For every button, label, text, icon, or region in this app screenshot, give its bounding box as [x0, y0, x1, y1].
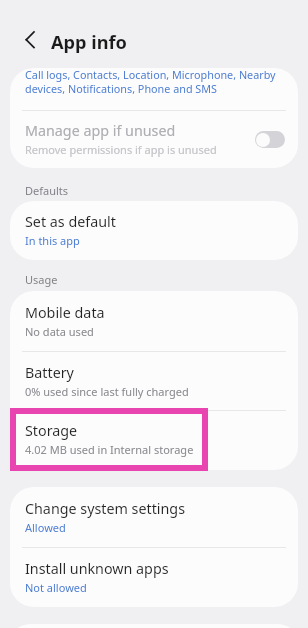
- staticText: Storage: [25, 422, 78, 441]
- button[interactable]: Storage: [10, 410, 298, 470]
- button[interactable]: Manage app if unused: [255, 131, 285, 148]
- staticText: 4.02 MB used in Internal storage: [25, 443, 194, 458]
- button[interactable]: Change system settings: [10, 487, 298, 547]
- button[interactable]: Manage app if unused: [10, 111, 298, 168]
- staticText: 0% used since last fully charged: [25, 384, 189, 399]
- staticText: Remove permissions if app is unused: [25, 142, 217, 157]
- button[interactable]: [10, 68, 298, 111]
- staticText: Usage: [25, 272, 58, 287]
- staticText: Manage app if unused: [25, 121, 176, 140]
- staticText: Install unknown apps: [25, 559, 169, 578]
- staticText: Call logs, Contacts, Location, Microphon…: [25, 67, 276, 97]
- staticText: 4.02 MB used in Internal storage: [25, 442, 194, 457]
- staticText: Allowed: [25, 520, 66, 535]
- staticText: Not allowed: [25, 580, 87, 595]
- staticText: Mobile data: [25, 303, 105, 322]
- staticText: App info: [51, 30, 127, 55]
- button[interactable]: Set as default: [10, 201, 298, 260]
- button[interactable]: Mobile data: [10, 291, 298, 351]
- staticText: Set as default: [25, 212, 116, 231]
- button[interactable]: Install unknown apps: [10, 547, 298, 607]
- staticText: No data used: [25, 324, 94, 339]
- button[interactable]: Storage: [16, 414, 202, 465]
- staticText: Defaults: [25, 183, 69, 198]
- staticText: Battery: [25, 363, 74, 382]
- staticText: Storage: [25, 421, 78, 440]
- staticText: In this app: [25, 233, 80, 248]
- button[interactable]: Battery: [10, 351, 298, 411]
- button[interactable]: Back: [16, 24, 46, 54]
- staticText: Change system settings: [25, 499, 185, 518]
